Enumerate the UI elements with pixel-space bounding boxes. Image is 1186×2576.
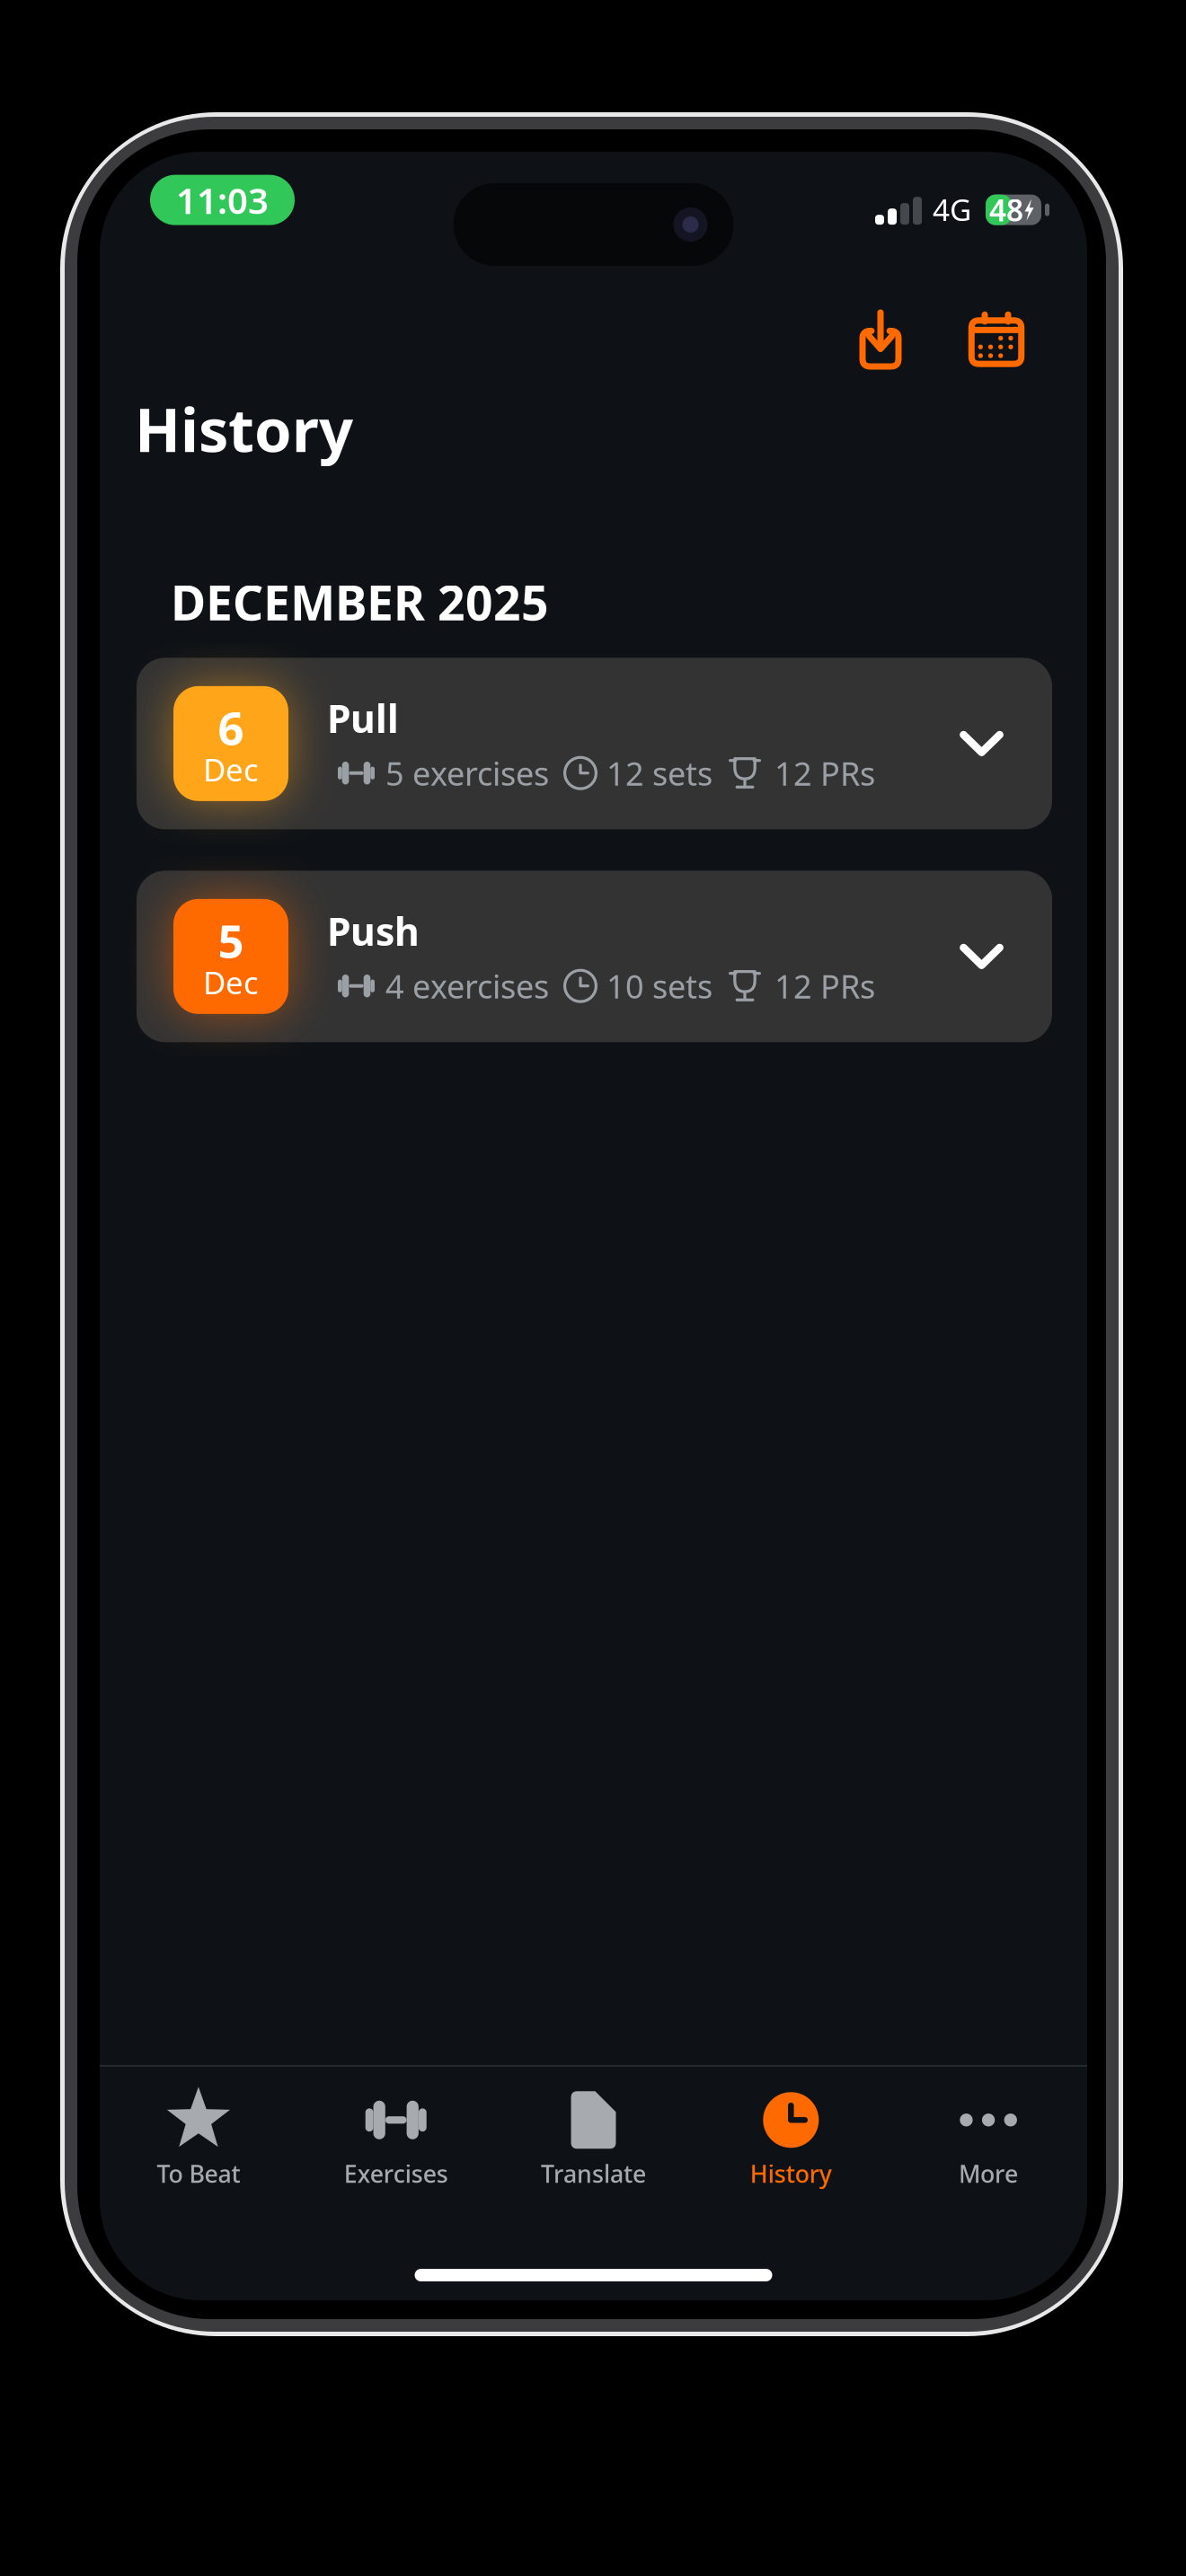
staticText: Translate bbox=[541, 2158, 646, 2190]
staticText: DECEMBER 2025 bbox=[171, 570, 549, 633]
staticText: 48 bbox=[989, 190, 1023, 230]
staticText: 12 PRs bbox=[774, 964, 875, 1007]
staticText: 6 bbox=[218, 697, 244, 758]
staticText: 12 sets bbox=[606, 752, 712, 795]
button[interactable]: More bbox=[890, 2090, 1087, 2194]
staticText: Push bbox=[327, 905, 420, 956]
staticText: 4 exercises bbox=[385, 964, 549, 1007]
button[interactable]: History bbox=[692, 2090, 890, 2194]
staticText: 5 exercises bbox=[385, 752, 549, 795]
staticText: 11:03 bbox=[176, 176, 269, 224]
button[interactable]: To Beat bbox=[100, 2090, 297, 2194]
button[interactable]: Export bbox=[854, 305, 907, 374]
staticText: History bbox=[750, 2158, 832, 2190]
button[interactable]: Calendar bbox=[969, 305, 1024, 374]
staticText: 12 PRs bbox=[774, 752, 875, 795]
staticText: Pull bbox=[327, 693, 399, 744]
staticText: History bbox=[135, 389, 353, 468]
staticText: Dec bbox=[203, 962, 259, 1003]
staticText: More bbox=[959, 2158, 1018, 2190]
staticText: 4G bbox=[933, 190, 971, 229]
staticText: To Beat bbox=[157, 2158, 240, 2190]
staticText: 10 sets bbox=[606, 964, 712, 1007]
staticText: Dec bbox=[203, 749, 259, 790]
button[interactable]: Translate bbox=[495, 2090, 692, 2194]
staticText: Exercises bbox=[344, 2158, 448, 2190]
button[interactable]: Exercises bbox=[297, 2090, 495, 2194]
staticText: 5 bbox=[218, 910, 244, 970]
button[interactable]: 6 bbox=[137, 658, 1052, 829]
button[interactable]: 5 bbox=[137, 871, 1052, 1042]
